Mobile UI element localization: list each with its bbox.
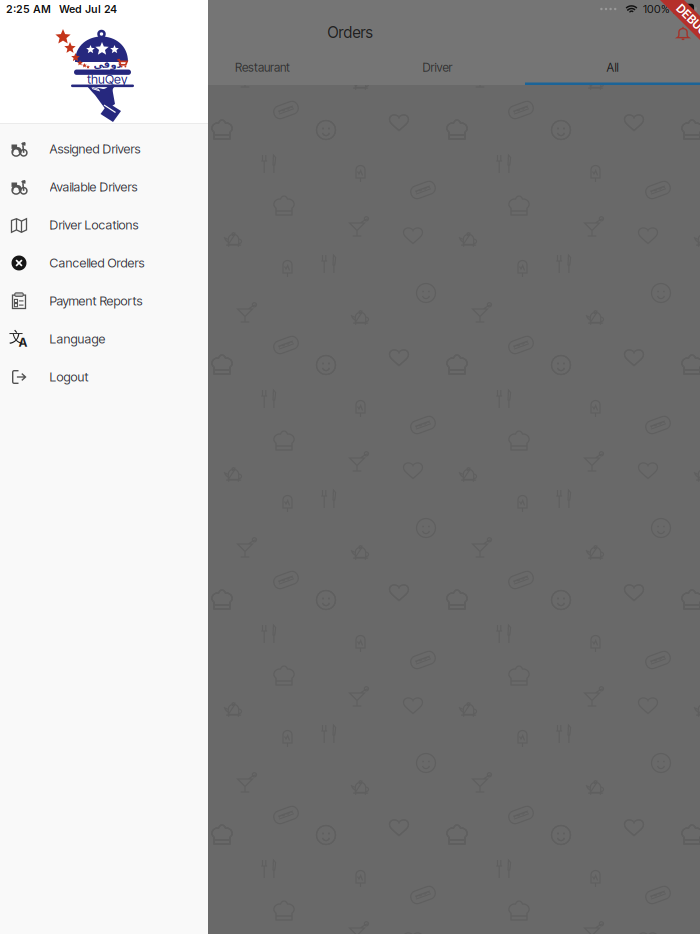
button[interactable]: Payment Reports bbox=[0, 282, 208, 320]
staticText: 2:25 AM bbox=[6, 2, 51, 15]
staticText: Cancelled Orders bbox=[49, 255, 144, 271]
staticText: All bbox=[606, 60, 618, 75]
staticText: 100% bbox=[643, 2, 670, 16]
staticText: ذوقي bbox=[93, 58, 121, 70]
button[interactable]: Assigned Drivers bbox=[0, 130, 208, 168]
button[interactable]: All bbox=[525, 49, 700, 85]
button[interactable]: Restaurant bbox=[175, 49, 350, 85]
staticText: 文 bbox=[9, 328, 24, 346]
staticText: Assigned Drivers bbox=[49, 141, 140, 157]
staticText: Available Drivers bbox=[49, 179, 137, 195]
button[interactable]: 文 bbox=[0, 320, 208, 358]
staticText: Wed Jul 24 bbox=[59, 2, 117, 15]
staticText: Payment Reports bbox=[49, 293, 142, 309]
button[interactable]: Logout bbox=[0, 358, 208, 396]
button[interactable]: Notifications bbox=[676, 26, 690, 41]
staticText: thuQey bbox=[87, 71, 127, 87]
button[interactable]: Driver Locations bbox=[0, 206, 208, 244]
staticText: Restaurant bbox=[235, 60, 290, 75]
staticText: Driver Locations bbox=[49, 217, 138, 233]
button[interactable]: Available Drivers bbox=[0, 168, 208, 206]
staticText: Driver bbox=[422, 60, 452, 75]
staticText: Logout bbox=[49, 369, 88, 385]
button[interactable]: Cancelled Orders bbox=[0, 244, 208, 282]
staticText: DEBUG bbox=[675, 6, 700, 20]
staticText: A bbox=[18, 335, 27, 350]
staticText: Orders bbox=[327, 23, 372, 42]
staticText: Language bbox=[49, 331, 105, 347]
button[interactable]: Driver bbox=[350, 49, 525, 85]
